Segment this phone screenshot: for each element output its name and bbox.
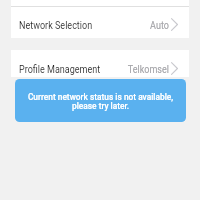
other: Open	[171, 18, 178, 31]
staticText: Profile Management	[19, 63, 101, 75]
staticText: Current network status is not available,…	[15, 92, 186, 111]
staticText: Network Selection	[19, 19, 93, 31]
button[interactable]: Profile Management	[11, 50, 189, 77]
staticText: Telkomsel	[128, 63, 169, 75]
staticText: Auto	[150, 19, 169, 31]
other: Open	[171, 62, 178, 75]
button[interactable]: Network Selection	[11, 7, 189, 38]
button[interactable]: Current network status is not available,…	[15, 79, 186, 122]
